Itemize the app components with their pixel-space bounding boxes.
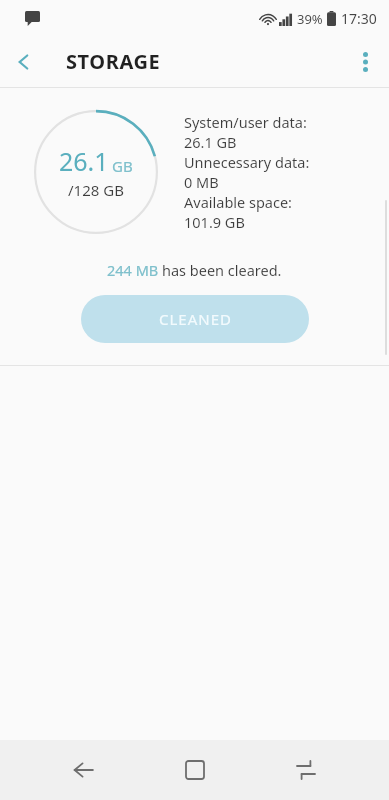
staticText: 0 MB <box>184 172 219 192</box>
staticText: 101.9 GB <box>184 212 245 232</box>
staticText: 244 MB has been cleared. <box>107 260 282 280</box>
button[interactable]: Recents <box>278 742 334 798</box>
staticText: 26.1 GB <box>184 132 237 152</box>
staticText: /128 GB <box>68 180 124 200</box>
staticText: 26.1 <box>59 144 109 178</box>
button[interactable]: More options <box>341 38 389 86</box>
staticText: GB <box>112 156 133 176</box>
button[interactable]: Back <box>0 38 48 86</box>
button[interactable]: CLEANED <box>81 295 309 343</box>
staticText: STORAGE <box>66 48 161 75</box>
staticText: Unnecessary data: <box>184 152 310 172</box>
staticText: CLEANED <box>159 309 232 329</box>
staticText: 17:30 <box>341 9 377 28</box>
button[interactable]: Back <box>55 742 111 798</box>
staticText: System/user data: <box>184 112 307 132</box>
button[interactable]: Home <box>167 742 223 798</box>
staticText: Available space: <box>184 192 293 212</box>
staticText: 39% <box>297 10 323 28</box>
